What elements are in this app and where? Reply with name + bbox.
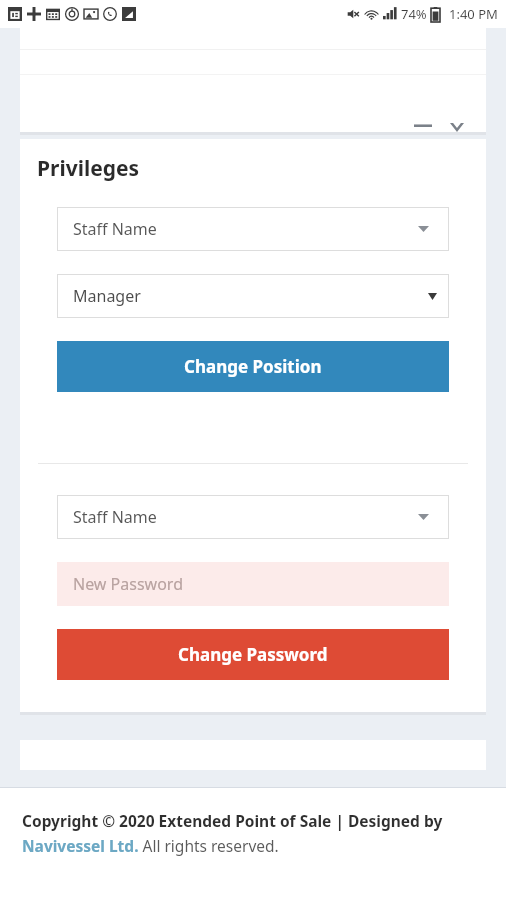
- staticText: Staff Name: [73, 218, 157, 240]
- button[interactable]: Collapse: [448, 119, 466, 135]
- staticText: Change Password: [178, 643, 328, 666]
- button[interactable]: Minimize: [414, 119, 432, 135]
- staticText: 74%: [401, 5, 427, 23]
- button[interactable]: Change Position: [57, 341, 449, 392]
- staticText: New Password: [73, 573, 183, 595]
- staticText: Copyright © 2020 Extended Point of Sale …: [22, 810, 490, 857]
- button[interactable]: Staff Name: [57, 207, 449, 251]
- button[interactable]: Change Password: [57, 629, 449, 680]
- button[interactable]: New Password: [57, 562, 449, 606]
- button[interactable]: Staff Name: [57, 495, 449, 539]
- staticText: 1:40 PM: [449, 5, 498, 23]
- staticText: Manager: [73, 285, 141, 307]
- staticText: Change Position: [184, 355, 322, 378]
- staticText: Privileges: [37, 154, 140, 183]
- staticText: Staff Name: [73, 506, 157, 528]
- button[interactable]: Manager: [57, 274, 449, 318]
